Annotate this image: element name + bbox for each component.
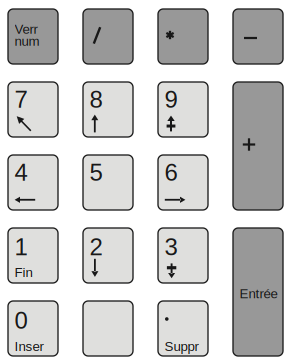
staticText: Suppr — [165, 339, 199, 354]
staticText: Verr — [15, 22, 38, 37]
button[interactable]: 4 Left — [0, 0, 50, 55]
button[interactable]: 9 Page Up — [0, 0, 50, 55]
staticText: 4 — [15, 159, 28, 186]
staticText: 3 — [165, 233, 178, 260]
staticText: 6 — [165, 159, 178, 186]
button[interactable]: 7 Home — [0, 0, 50, 55]
button[interactable]: Entrée — [0, 0, 50, 128]
staticText: Inser — [15, 339, 44, 354]
button[interactable]: 6 Right — [0, 0, 50, 55]
staticText: 7 — [15, 86, 28, 113]
button[interactable]: Decimal point, Suppr — [0, 0, 50, 55]
button[interactable]: Plus — [0, 0, 50, 128]
button[interactable]: 2 Down — [0, 0, 50, 55]
staticText: 0 — [15, 307, 28, 334]
staticText: 2 — [90, 233, 103, 260]
button[interactable]: Blank — [0, 0, 50, 55]
staticText: 1 — [15, 233, 28, 260]
button[interactable]: 0 Inser — [0, 0, 50, 55]
button[interactable]: Multiply — [0, 0, 50, 55]
button[interactable]: 5 — [0, 0, 50, 55]
staticText: Entrée — [240, 286, 278, 301]
staticText: 5 — [90, 159, 103, 186]
staticText: 9 — [165, 86, 178, 113]
button[interactable]: 1 Fin — [0, 0, 50, 55]
button[interactable]: Verr num — [0, 0, 50, 55]
staticText: Fin — [15, 265, 33, 280]
button[interactable]: Divide — [0, 0, 50, 55]
button[interactable]: 8 Up — [0, 0, 50, 55]
staticText: 8 — [90, 86, 103, 113]
button[interactable]: 3 Page Down — [0, 0, 50, 55]
staticText: num — [15, 34, 40, 49]
button[interactable]: Minus — [0, 0, 50, 55]
